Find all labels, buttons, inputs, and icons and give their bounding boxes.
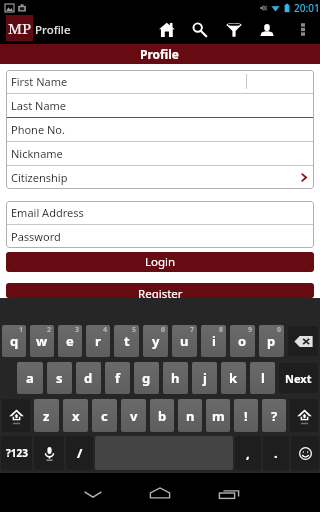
staticText: v (130, 407, 138, 425)
button[interactable]: m (206, 399, 230, 432)
button[interactable]: Filter (220, 15, 248, 44)
staticText: Phone No. (11, 122, 65, 137)
button[interactable]: App logo (6, 15, 33, 41)
button[interactable]: Home (158, 15, 178, 44)
button[interactable]: Voice input (34, 436, 64, 470)
button[interactable]: d (76, 362, 101, 394)
staticText: 6 (161, 325, 166, 335)
button[interactable]: Search (178, 15, 220, 44)
staticText: x (72, 407, 80, 425)
button[interactable]: o (230, 325, 255, 357)
staticText: w (36, 332, 48, 350)
button[interactable]: Email Address (6, 201, 314, 224)
button[interactable]: n (178, 399, 202, 432)
staticText: h (171, 369, 180, 387)
staticText: y (152, 332, 160, 350)
staticText: o (238, 332, 247, 350)
staticText: Password (11, 229, 61, 244)
staticText: 2 (47, 325, 52, 335)
button[interactable]: Emoji (291, 436, 319, 470)
button[interactable]: j (192, 362, 217, 394)
staticText: f (115, 369, 121, 387)
button[interactable]: e (58, 325, 82, 357)
staticText: e (66, 332, 74, 350)
button[interactable]: u (172, 325, 197, 357)
staticText: Last Name (11, 98, 67, 113)
staticText: 9 (248, 325, 253, 335)
staticText: . (274, 444, 278, 462)
button[interactable]: s (47, 362, 72, 394)
button[interactable]: Last Name (6, 94, 314, 117)
button[interactable]: Account (248, 15, 286, 44)
button[interactable]: Shift (2, 399, 30, 432)
button[interactable]: i (201, 325, 226, 357)
staticText: Email Address (11, 205, 84, 220)
button[interactable]: f (105, 362, 130, 394)
staticText: a (26, 369, 34, 387)
button[interactable]: Register (6, 283, 314, 298)
button[interactable]: w (30, 325, 54, 357)
staticText: ? (271, 407, 278, 425)
button[interactable]: Password (6, 225, 314, 248)
button[interactable]: Shift (290, 399, 318, 432)
button[interactable]: Nickname (6, 142, 314, 165)
button[interactable]: Phone No. (6, 118, 314, 141)
staticText: r (95, 332, 101, 350)
button[interactable]: z (34, 399, 59, 432)
staticText: l (261, 369, 265, 387)
button[interactable]: x (63, 399, 88, 432)
staticText: s (56, 369, 63, 387)
button[interactable]: Next (279, 363, 318, 393)
button[interactable]: t (114, 325, 139, 357)
staticText: 5 (132, 325, 137, 335)
staticText: Profile (140, 46, 180, 62)
button[interactable]: Home (129, 473, 191, 512)
button[interactable]: Symbols (1, 436, 32, 470)
staticText: MP (8, 18, 32, 38)
staticText: j (203, 369, 207, 387)
button[interactable]: l (250, 362, 275, 394)
staticText: b (158, 407, 167, 425)
button[interactable]: p (259, 325, 284, 357)
button[interactable]: Citizenship (6, 166, 314, 189)
staticText: d (84, 369, 93, 387)
staticText: p (267, 332, 276, 350)
staticText: , (246, 444, 250, 462)
staticText: 3 (75, 325, 80, 335)
button[interactable]: Comma (235, 436, 261, 470)
staticText: 0 (277, 325, 282, 335)
button[interactable]: Login (6, 252, 314, 272)
staticText: First Name (11, 74, 68, 89)
button[interactable]: Slash (66, 436, 93, 470)
button[interactable]: h (163, 362, 188, 394)
button[interactable]: v (121, 399, 146, 432)
button[interactable]: c (92, 399, 117, 432)
button[interactable]: Delete (288, 326, 318, 356)
staticText: 20:01 (294, 1, 320, 15)
button[interactable]: Period (263, 436, 289, 470)
staticText: i (212, 332, 216, 350)
staticText: k (229, 369, 238, 387)
button[interactable]: b (150, 399, 174, 432)
staticText: Next (285, 371, 312, 386)
button[interactable]: ? (262, 399, 286, 432)
staticText: Register (138, 286, 183, 298)
staticText: 1 (19, 325, 24, 335)
staticText: Nickname (11, 146, 63, 161)
staticText: g (142, 369, 151, 387)
button[interactable]: k (221, 362, 246, 394)
button[interactable]: q (2, 325, 26, 357)
button[interactable]: Recent apps (198, 473, 260, 512)
staticText: n (186, 407, 195, 425)
button[interactable]: ! (234, 399, 258, 432)
button[interactable]: a (17, 362, 43, 394)
staticText: t (124, 332, 130, 350)
staticText: 8 (219, 325, 224, 335)
button[interactable]: More options (286, 15, 320, 44)
button[interactable]: Hide keyboard (62, 473, 124, 512)
button[interactable]: g (134, 362, 159, 394)
button[interactable]: r (86, 325, 110, 357)
button[interactable]: First Name (6, 70, 314, 93)
button[interactable]: y (143, 325, 168, 357)
